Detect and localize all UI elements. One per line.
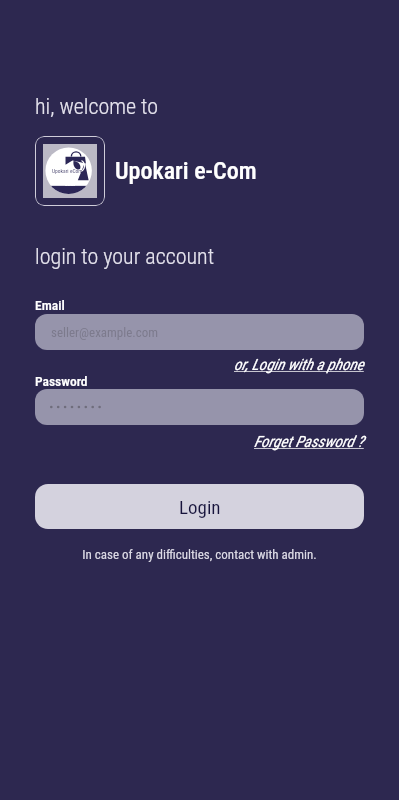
button[interactable]: Password input	[35, 389, 364, 425]
staticText: Password	[35, 373, 88, 389]
button[interactable]: Login	[35, 484, 364, 529]
button[interactable]: Forget Password ?	[254, 433, 364, 451]
staticText: Login	[179, 496, 221, 518]
staticText: seller@example.com	[51, 325, 159, 340]
staticText: In case of any difficulties, contact wit…	[82, 547, 317, 562]
staticText: Upokari e-Com	[115, 157, 257, 185]
button[interactable]: Email input	[35, 314, 364, 350]
staticText: or, Login with a phone	[234, 356, 364, 374]
staticText: Seller	[65, 182, 76, 187]
button[interactable]: or, Login with a phone	[234, 356, 364, 374]
staticText: login to your account	[35, 244, 215, 270]
staticText: hi, welcome to	[35, 94, 159, 120]
button[interactable]: Upokari e-Com logo	[35, 136, 105, 206]
staticText: Email	[35, 297, 65, 313]
staticText: Forget Password ?	[254, 433, 364, 451]
staticText: Upokari eCom	[52, 168, 83, 174]
